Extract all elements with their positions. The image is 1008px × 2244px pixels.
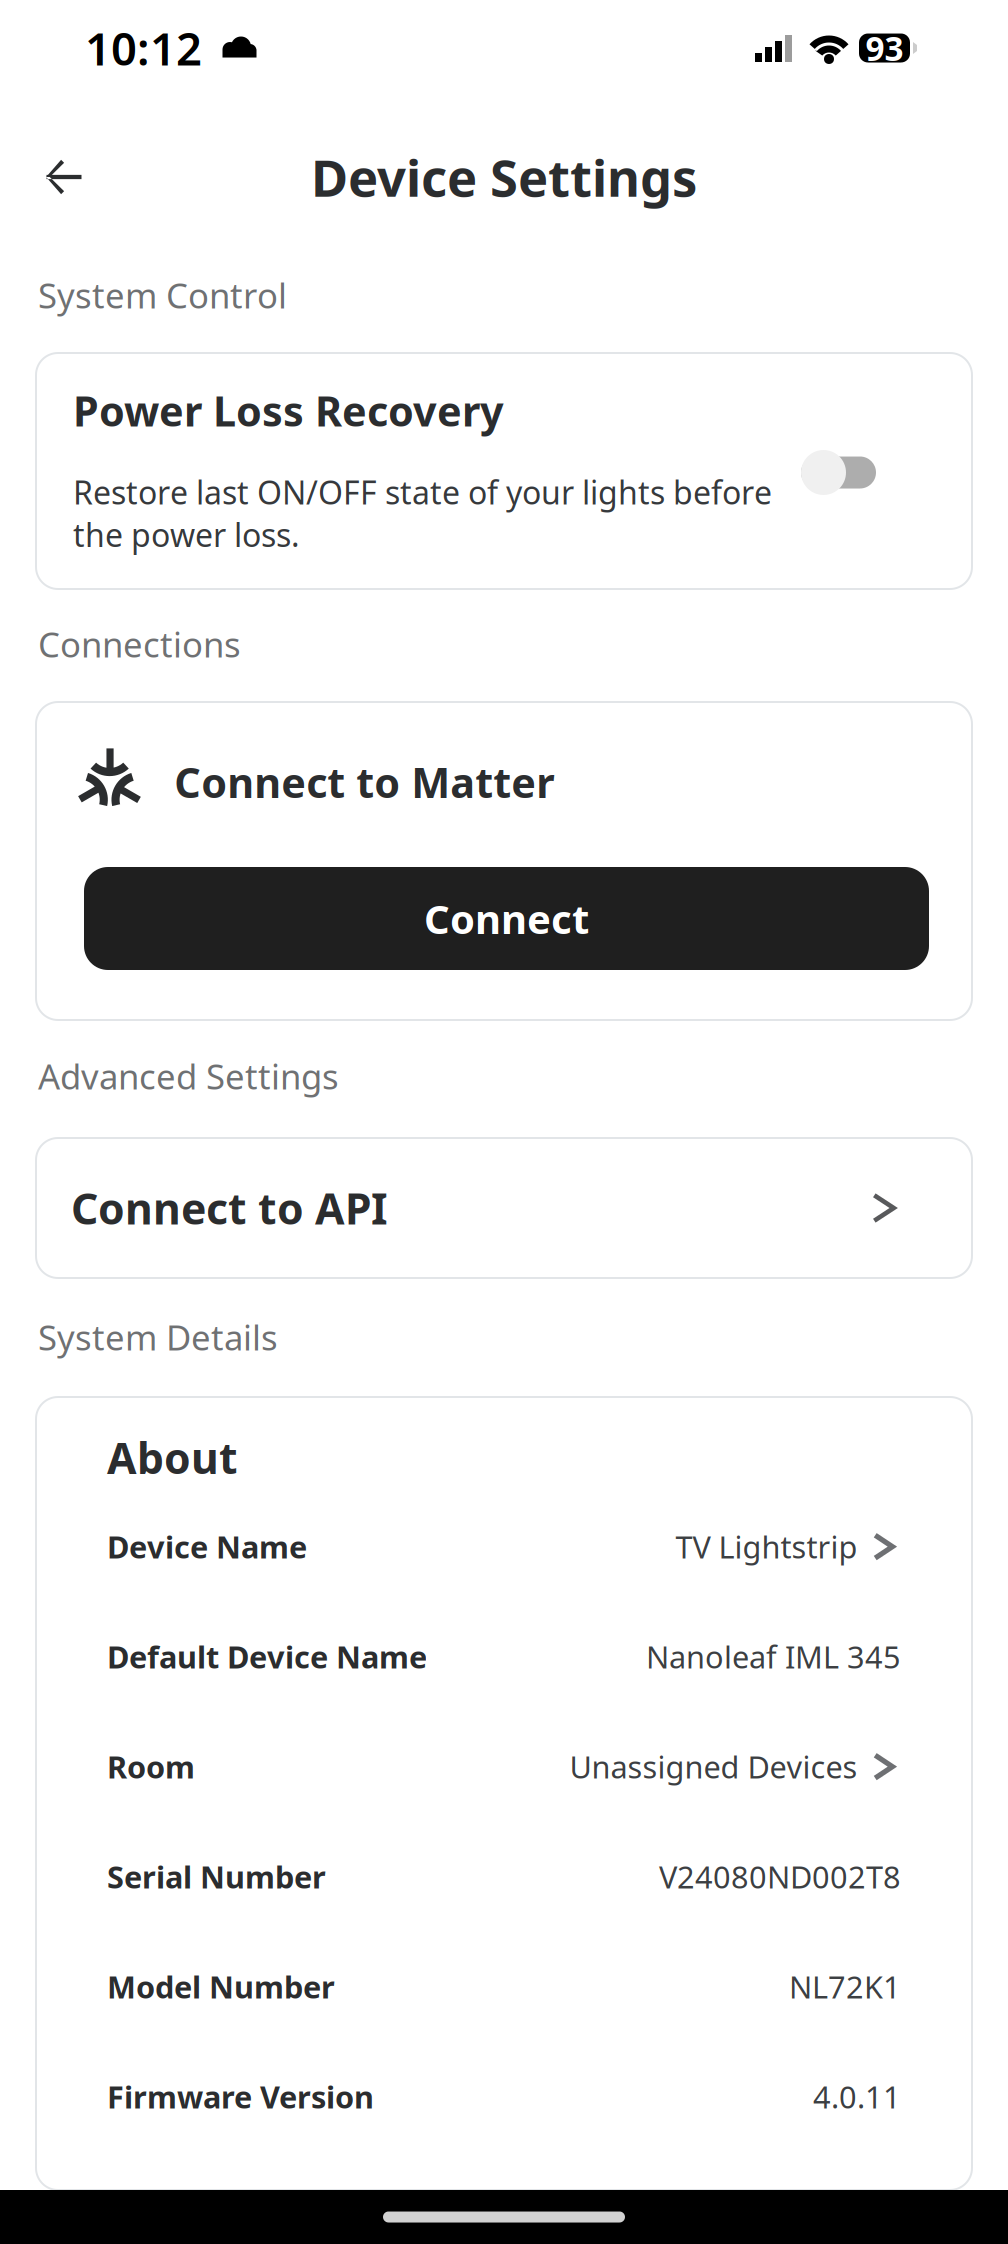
staticText: Unassigned Devices <box>570 1746 858 1787</box>
staticText: Room <box>107 1746 195 1787</box>
staticText: Connect <box>424 892 589 945</box>
staticText: 4.0.11 <box>813 2076 901 2117</box>
button[interactable]: Connect <box>84 867 929 970</box>
staticText: Model Number <box>107 1966 335 2007</box>
staticText: V24080ND002T8 <box>659 1856 901 1897</box>
staticText: Connections <box>38 621 241 667</box>
staticText: Firmware Version <box>107 2076 374 2117</box>
button[interactable]: Device Name <box>36 1516 972 1578</box>
button[interactable]: Serial Number <box>36 1846 972 1908</box>
staticText: Nanoleaf IML 345 <box>646 1636 901 1677</box>
staticText: Power Loss Recovery <box>73 383 504 438</box>
staticText: 10:12 <box>85 18 202 78</box>
staticText: Default Device Name <box>107 1636 427 1677</box>
button[interactable]: Room <box>36 1736 972 1798</box>
staticText: NL72K1 <box>789 1966 901 2007</box>
staticText: Serial Number <box>107 1856 326 1897</box>
button[interactable]: Back <box>26 139 102 215</box>
staticText: System Details <box>38 1314 278 1360</box>
staticText: 93 <box>865 26 903 70</box>
button[interactable]: Default Device Name <box>36 1626 972 1688</box>
button[interactable]: Connect to API <box>36 1138 972 1278</box>
staticText: System Control <box>38 272 287 318</box>
staticText: Restore last ON/OFF state of your lights… <box>73 471 772 556</box>
staticText: About <box>107 1429 238 1486</box>
staticText: Device Settings <box>311 143 697 211</box>
button[interactable]: Model Number <box>36 1956 972 2018</box>
staticText: Device Name <box>107 1526 307 1567</box>
staticText: Connect to Matter <box>174 755 554 809</box>
staticText: Advanced Settings <box>38 1053 339 1099</box>
staticText: TV Lightstrip <box>676 1526 858 1567</box>
button[interactable]: Firmware Version <box>36 2066 972 2128</box>
staticText: Connect to API <box>71 1180 388 1236</box>
